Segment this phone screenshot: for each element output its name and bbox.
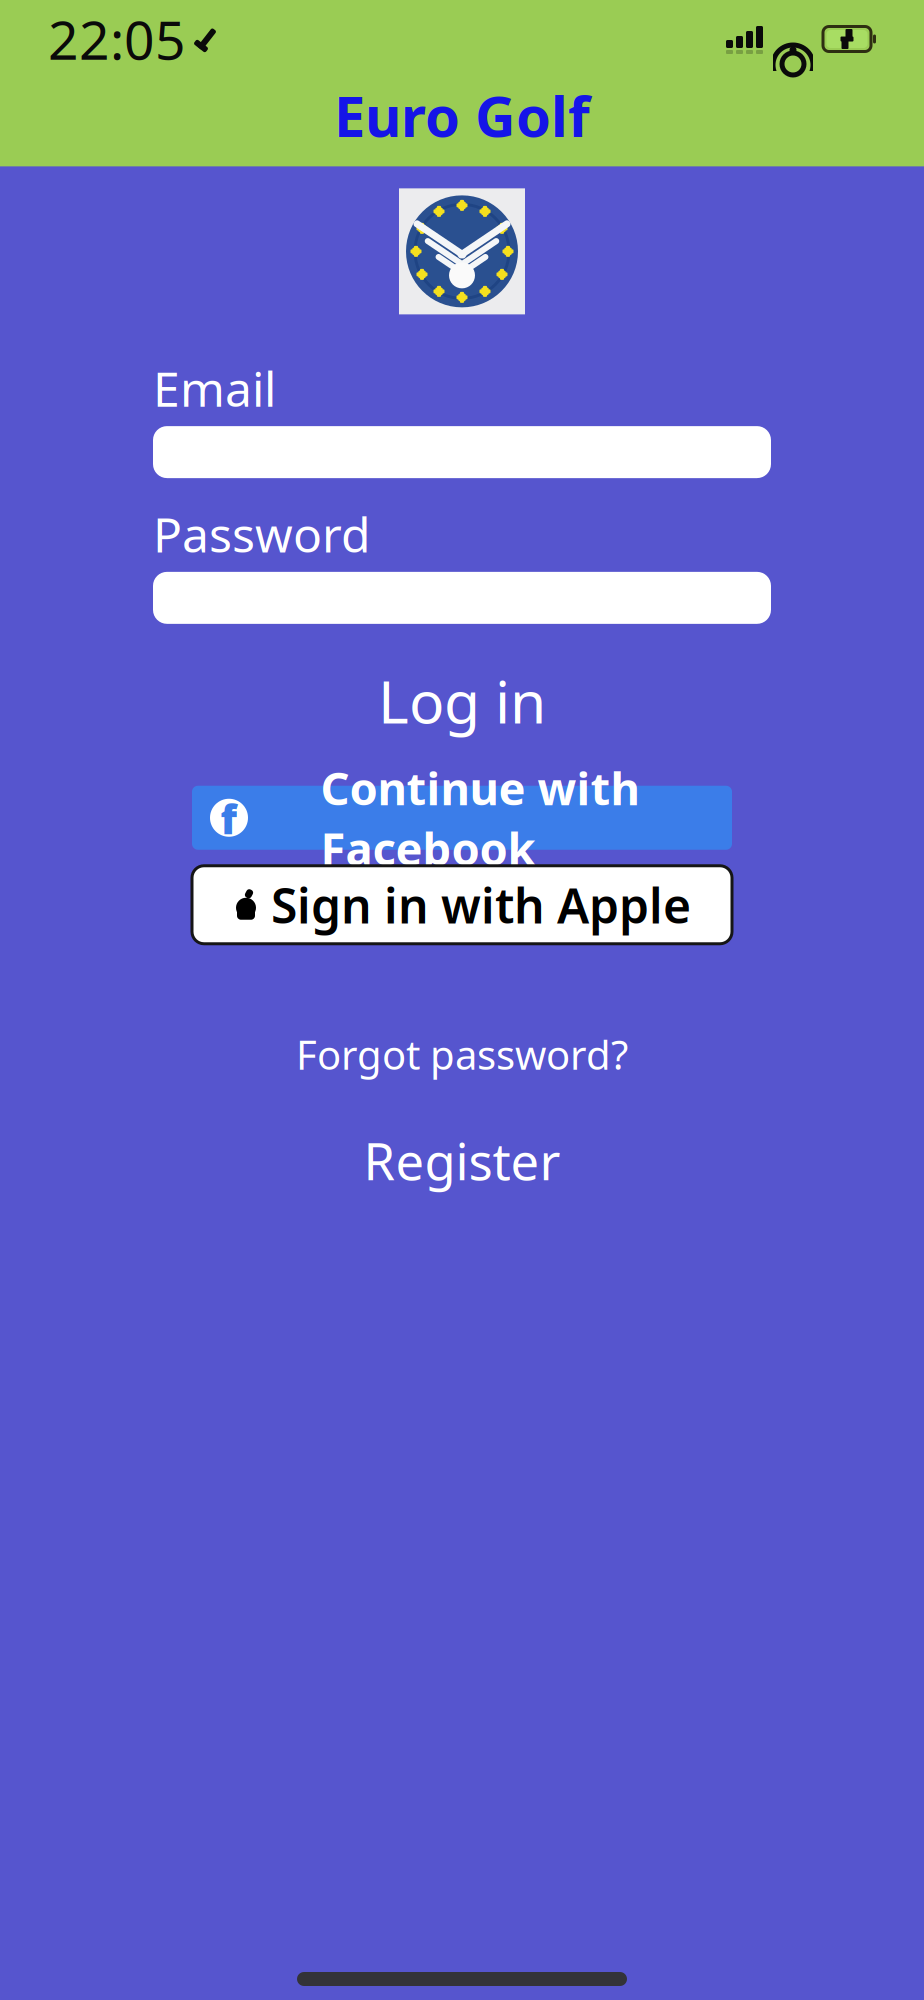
staticText: Email xyxy=(153,356,276,420)
staticText: Password xyxy=(153,502,371,566)
button[interactable]: Euro Golf xyxy=(0,78,924,166)
staticText: Forgot password? xyxy=(296,1028,628,1081)
staticText: Register xyxy=(363,1127,560,1194)
button[interactable]: f xyxy=(192,786,732,850)
staticText: Sign in with Apple xyxy=(271,873,691,937)
button[interactable]: Log in xyxy=(0,654,924,748)
button[interactable]: Forgot password? xyxy=(0,1020,924,1089)
button[interactable] xyxy=(153,426,771,478)
button[interactable] xyxy=(153,572,771,624)
button[interactable]: Register xyxy=(0,1119,924,1202)
staticText: 22:05 xyxy=(48,4,186,74)
staticText: f xyxy=(220,792,237,845)
staticText: Log in xyxy=(378,662,546,740)
button[interactable]: Sign in with Apple xyxy=(192,866,732,944)
staticText: Euro Golf xyxy=(334,78,590,152)
staticText: Continue with Facebook xyxy=(320,758,639,878)
